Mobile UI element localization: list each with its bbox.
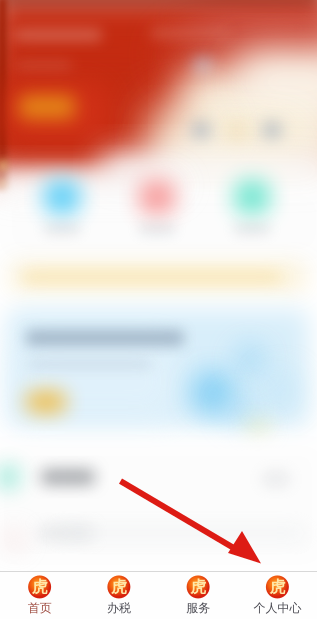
staticText: 个人中心 [253,600,301,615]
button[interactable]: 虎 [158,572,238,619]
button[interactable]: 虎 [79,572,158,619]
staticText: 虎 [32,577,48,597]
staticText: 虎 [190,577,206,597]
staticText: 虎 [269,577,285,597]
staticText: 服务 [186,600,210,615]
staticText: 首页 [28,600,52,615]
staticText: 办税 [107,600,131,615]
button[interactable]: 虎 [0,572,79,619]
button[interactable]: 虎 [238,572,317,619]
staticText: 虎 [111,577,127,597]
